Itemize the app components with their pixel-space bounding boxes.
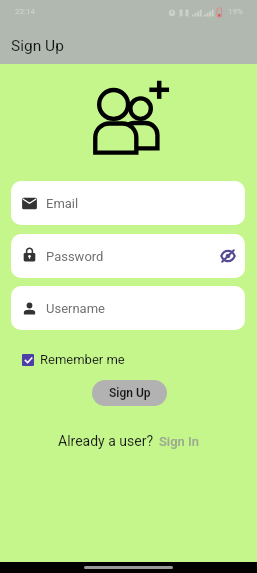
button[interactable]: Remember me — [18, 348, 129, 371]
button[interactable]: Sign In — [159, 434, 199, 449]
staticText: Password — [46, 249, 104, 264]
button[interactable]: Password — [11, 234, 245, 278]
staticText: 22:14 — [15, 7, 35, 16]
staticText: Remember me — [40, 352, 125, 367]
button[interactable]: Sign Up — [92, 380, 167, 406]
staticText: Sign Up — [11, 37, 64, 55]
staticText: Email — [46, 196, 79, 211]
button[interactable]: Show password — [220, 248, 236, 264]
staticText: Sign Up — [109, 386, 151, 400]
button[interactable]: Username — [11, 286, 245, 330]
staticText: 19% — [228, 7, 243, 16]
staticText: Username — [46, 301, 105, 316]
button[interactable]: Email — [11, 181, 245, 225]
staticText: Sign In — [159, 434, 199, 449]
staticText: Already a user? — [58, 433, 153, 449]
